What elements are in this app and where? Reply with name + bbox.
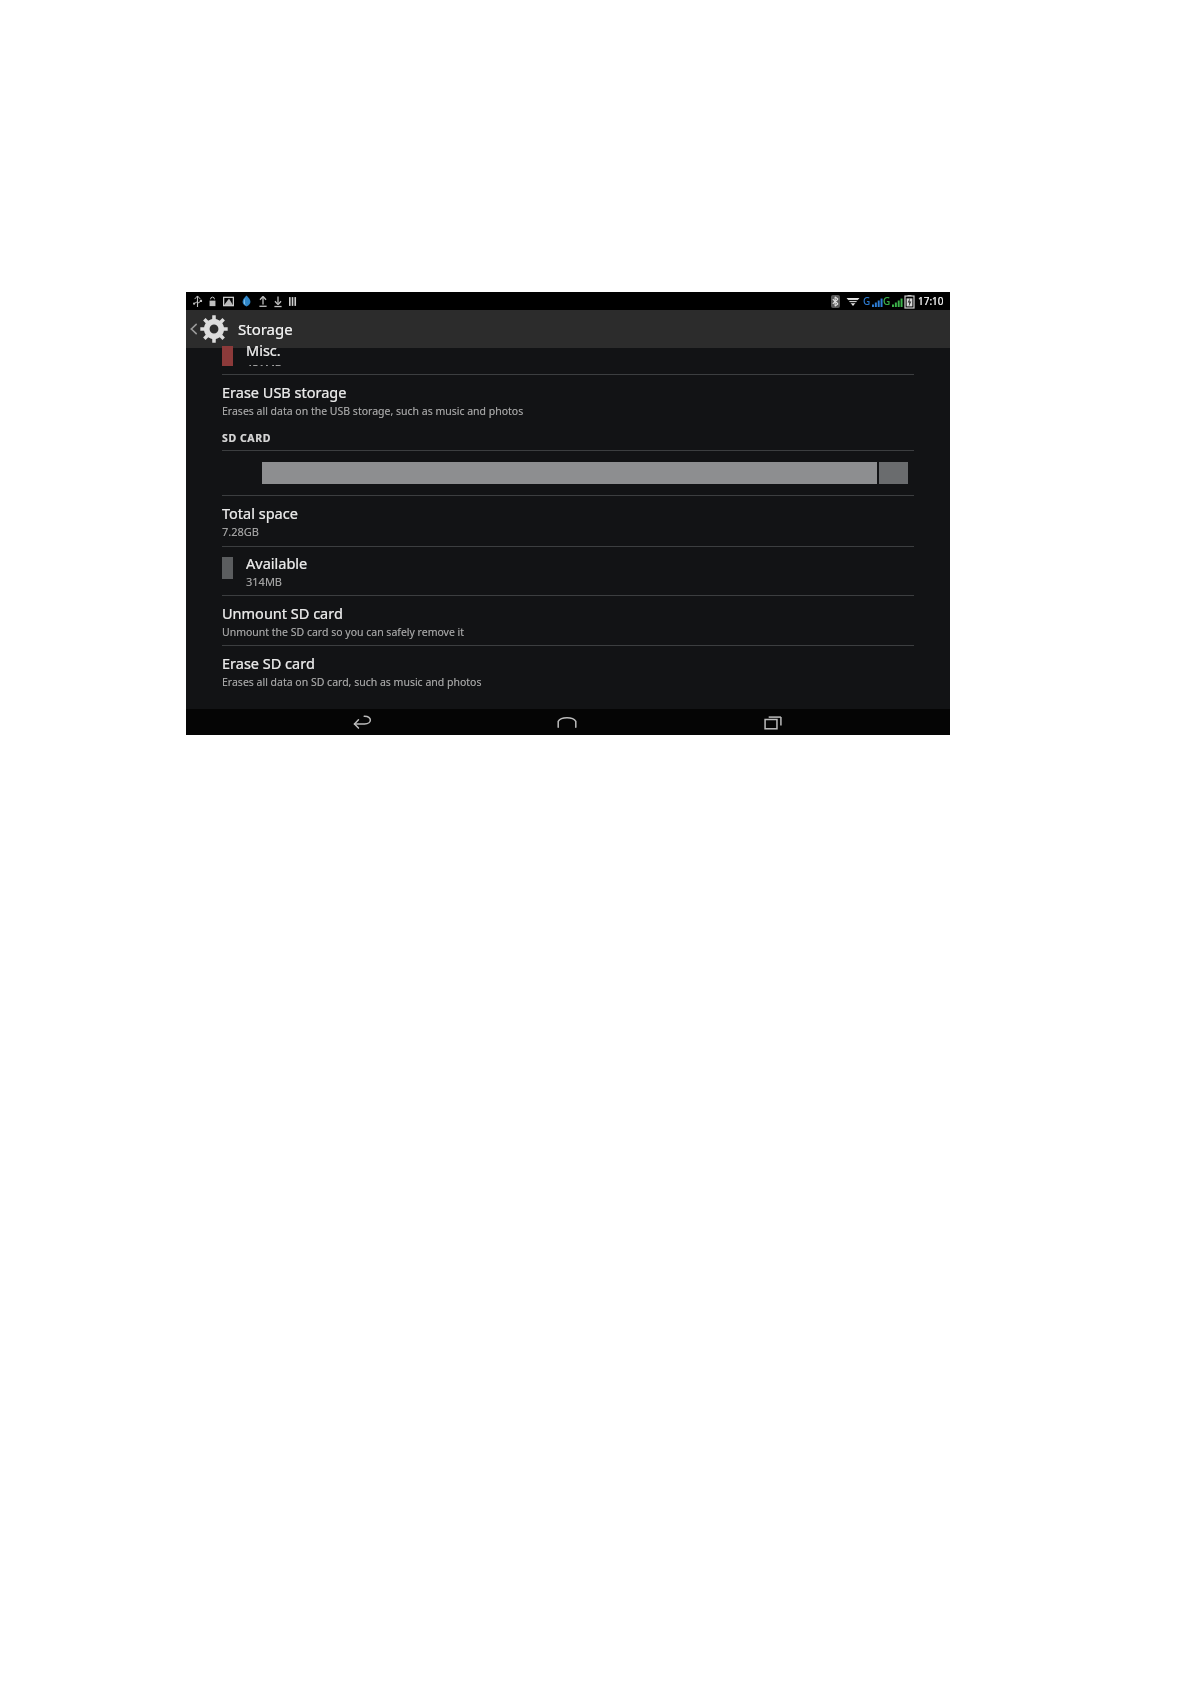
button[interactable]: Misc. [186,348,950,374]
staticText: Available [246,553,308,573]
staticText: Misc. [246,340,281,360]
staticText: G [883,294,891,308]
staticText: Total space [222,503,298,523]
staticText: SD CARD [222,431,271,445]
button[interactable]: Total space [186,496,950,546]
staticText: Unmount the SD card so you can safely re… [222,625,465,639]
button[interactable]: Back [333,709,391,735]
button[interactable]: Available [186,547,950,595]
button[interactable]: Erase SD card [186,646,950,695]
staticText: 7.28GB [222,524,259,539]
staticText: G [863,294,871,308]
button[interactable]: Home [538,709,596,735]
staticText: Erases all data on the USB storage, such… [222,404,524,418]
button[interactable]: Back [186,312,299,346]
button[interactable]: Unmount SD card [186,596,950,645]
staticText: Erase USB storage [222,382,347,402]
staticText: Erase SD card [222,653,315,673]
staticText: Unmount SD card [222,603,343,623]
staticText: Erases all data on SD card, such as musi… [222,675,482,689]
button[interactable]: Recent apps [744,709,802,735]
staticText: 451MB [246,361,283,366]
staticText: 314MB [246,574,283,589]
button[interactable]: Erase USB storage [186,375,950,424]
staticText: 17:10 [918,294,944,308]
staticText: Storage [238,319,293,339]
